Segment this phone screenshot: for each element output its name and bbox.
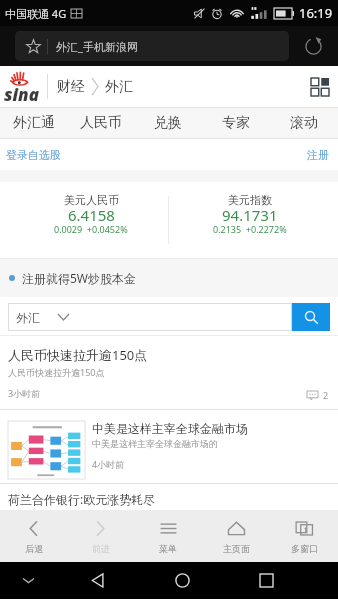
button[interactable]: Home <box>140 562 224 599</box>
button[interactable]: 外汇 <box>105 78 133 96</box>
staticText: 16:19 <box>299 4 333 22</box>
staticText: 6.4158 <box>68 205 115 225</box>
button[interactable]: 人民币 <box>67 107 134 139</box>
button[interactable]: Search <box>292 303 330 331</box>
button[interactable]: 中美是这样主宰全球金融市场 <box>0 410 338 484</box>
staticText: 中美是这样主宰全球金融市场 <box>92 421 248 436</box>
staticText: 人民币 <box>80 114 122 132</box>
button[interactable]: 兑换 <box>134 107 202 139</box>
staticText: 主页面 <box>223 543 250 554</box>
staticText: 外汇 <box>16 310 40 325</box>
staticText: 4小时前 <box>92 458 125 470</box>
staticText: 菜单 <box>159 543 177 554</box>
staticText: 滚动 <box>290 114 318 132</box>
button[interactable]: 外汇通 <box>0 107 67 139</box>
button[interactable]: 注册 <box>307 148 329 162</box>
staticText: 中美是这样主宰全球金融市场的 <box>92 438 218 449</box>
staticText: 注册就得5W炒股本金 <box>22 270 137 286</box>
staticText: 美元人民币 <box>64 193 119 207</box>
staticText: sina <box>4 83 39 106</box>
button[interactable]: 注册就得5W炒股本金 <box>0 258 338 297</box>
button[interactable]: Channels <box>302 66 338 107</box>
button[interactable]: 人民币快速拉升逾150点 <box>0 336 338 410</box>
button[interactable]: 前进 <box>67 510 134 562</box>
button[interactable]: 多窗口 <box>270 510 338 562</box>
button[interactable]: Recent apps <box>224 562 308 599</box>
button[interactable]: Refresh <box>289 26 338 66</box>
staticText: 专家 <box>222 114 250 132</box>
staticText: 中国联通 4G <box>5 6 67 21</box>
staticText: 美元指数 <box>228 193 272 207</box>
button[interactable]: 财经 <box>57 78 85 96</box>
button[interactable]: 登录自选股 <box>6 148 61 162</box>
button[interactable]: 美元指数 <box>170 182 329 258</box>
button[interactable]: 专家 <box>202 107 270 139</box>
staticText: 2 <box>323 389 329 401</box>
staticText: 前进 <box>92 543 110 554</box>
button[interactable]: 美元人民币 <box>12 182 170 258</box>
staticText: 0.0029 +0.0452% <box>54 223 128 235</box>
staticText: 荷兰合作银行:欧元涨势耗尽 <box>8 491 156 507</box>
staticText: 人民币快速拉升逾150点 <box>8 366 105 378</box>
button[interactable]: 主页面 <box>202 510 270 562</box>
staticText: 兑换 <box>154 114 182 132</box>
staticText: 3小时前 <box>8 387 41 399</box>
staticText: 多窗口 <box>291 543 318 554</box>
staticText: 0.2135 +0.2272% <box>213 223 287 235</box>
button[interactable]: Sina home <box>0 66 47 107</box>
button[interactable]: 滚动 <box>270 107 338 139</box>
staticText: 94.1731 <box>222 205 278 225</box>
staticText: 后退 <box>25 543 43 554</box>
staticText: 外汇_手机新浪网 <box>56 39 138 54</box>
button[interactable]: Hide navigation bar <box>0 562 56 599</box>
staticText: 人民币快速拉升逾150点 <box>8 346 148 364</box>
button[interactable]: Back <box>56 562 140 599</box>
button[interactable]: 荷兰合作银行:欧元涨势耗尽 <box>0 484 338 510</box>
button[interactable]: 外汇 <box>8 303 292 331</box>
button[interactable]: 后退 <box>0 510 67 562</box>
button[interactable]: 菜单 <box>134 510 202 562</box>
other: Bookmark <box>26 39 41 54</box>
button[interactable]: Bookmark <box>15 31 289 61</box>
staticText: 外汇通 <box>13 114 55 132</box>
